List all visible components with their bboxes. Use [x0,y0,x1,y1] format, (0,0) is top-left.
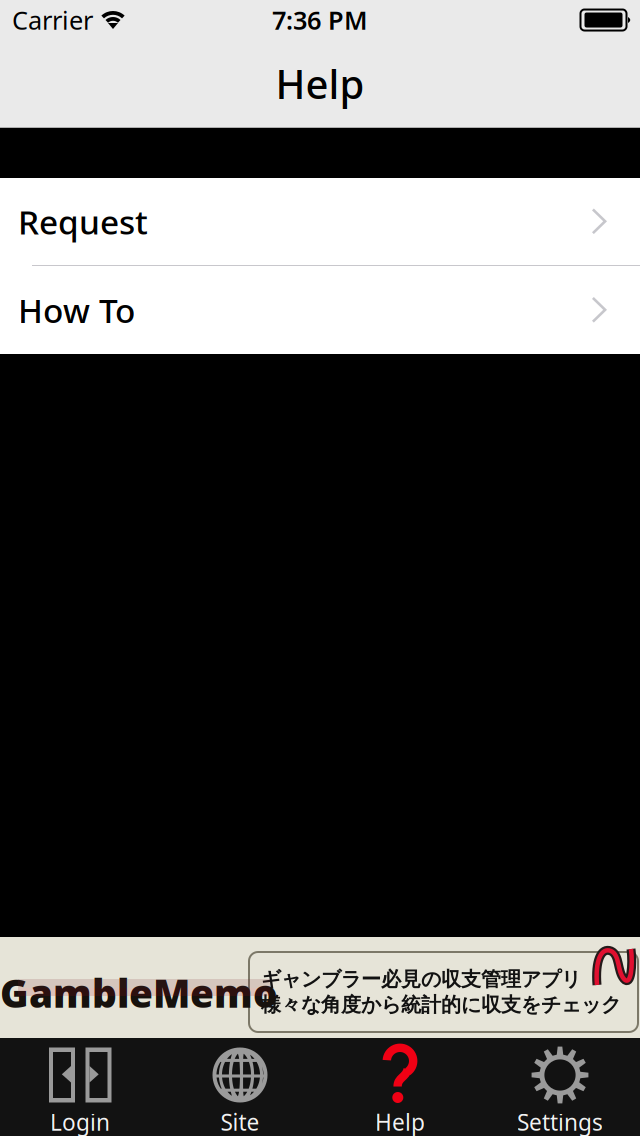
staticText: Help [375,1107,425,1136]
button[interactable]: ギャンブラー必見の収支管理アプリ [0,937,640,1038]
staticText: Request [18,199,148,244]
staticText: ギャンブラー必見の収支管理アプリ [261,967,581,991]
button[interactable]: How To [0,266,640,354]
button[interactable]: Settings [480,1038,640,1136]
button[interactable]: Site [160,1038,320,1136]
staticText: How To [18,288,135,332]
button[interactable]: Help [320,1038,480,1136]
staticText: Login [50,1107,110,1136]
button[interactable]: Request [0,178,640,265]
staticText: 様々な角度から統計的に収支をチェック [261,992,621,1017]
staticText: Help [275,57,364,110]
button[interactable]: Login [0,1038,160,1136]
staticText: Site [220,1107,259,1136]
staticText: GambleMemo [0,967,278,1018]
staticText: 7:36 PM [272,3,368,37]
staticText: Settings [517,1107,603,1136]
staticText: Carrier [12,3,93,37]
